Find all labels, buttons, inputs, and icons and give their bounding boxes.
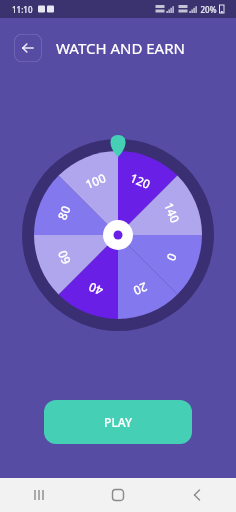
button[interactable]: PLAY — [44, 400, 192, 444]
staticText: WATCH AND EARN — [56, 38, 185, 58]
button[interactable]: Home — [78, 478, 157, 512]
button[interactable]: Back — [157, 478, 236, 512]
staticText: PLAY — [104, 414, 132, 430]
button[interactable]: Recent apps — [0, 478, 78, 512]
button[interactable]: Back — [14, 34, 42, 62]
